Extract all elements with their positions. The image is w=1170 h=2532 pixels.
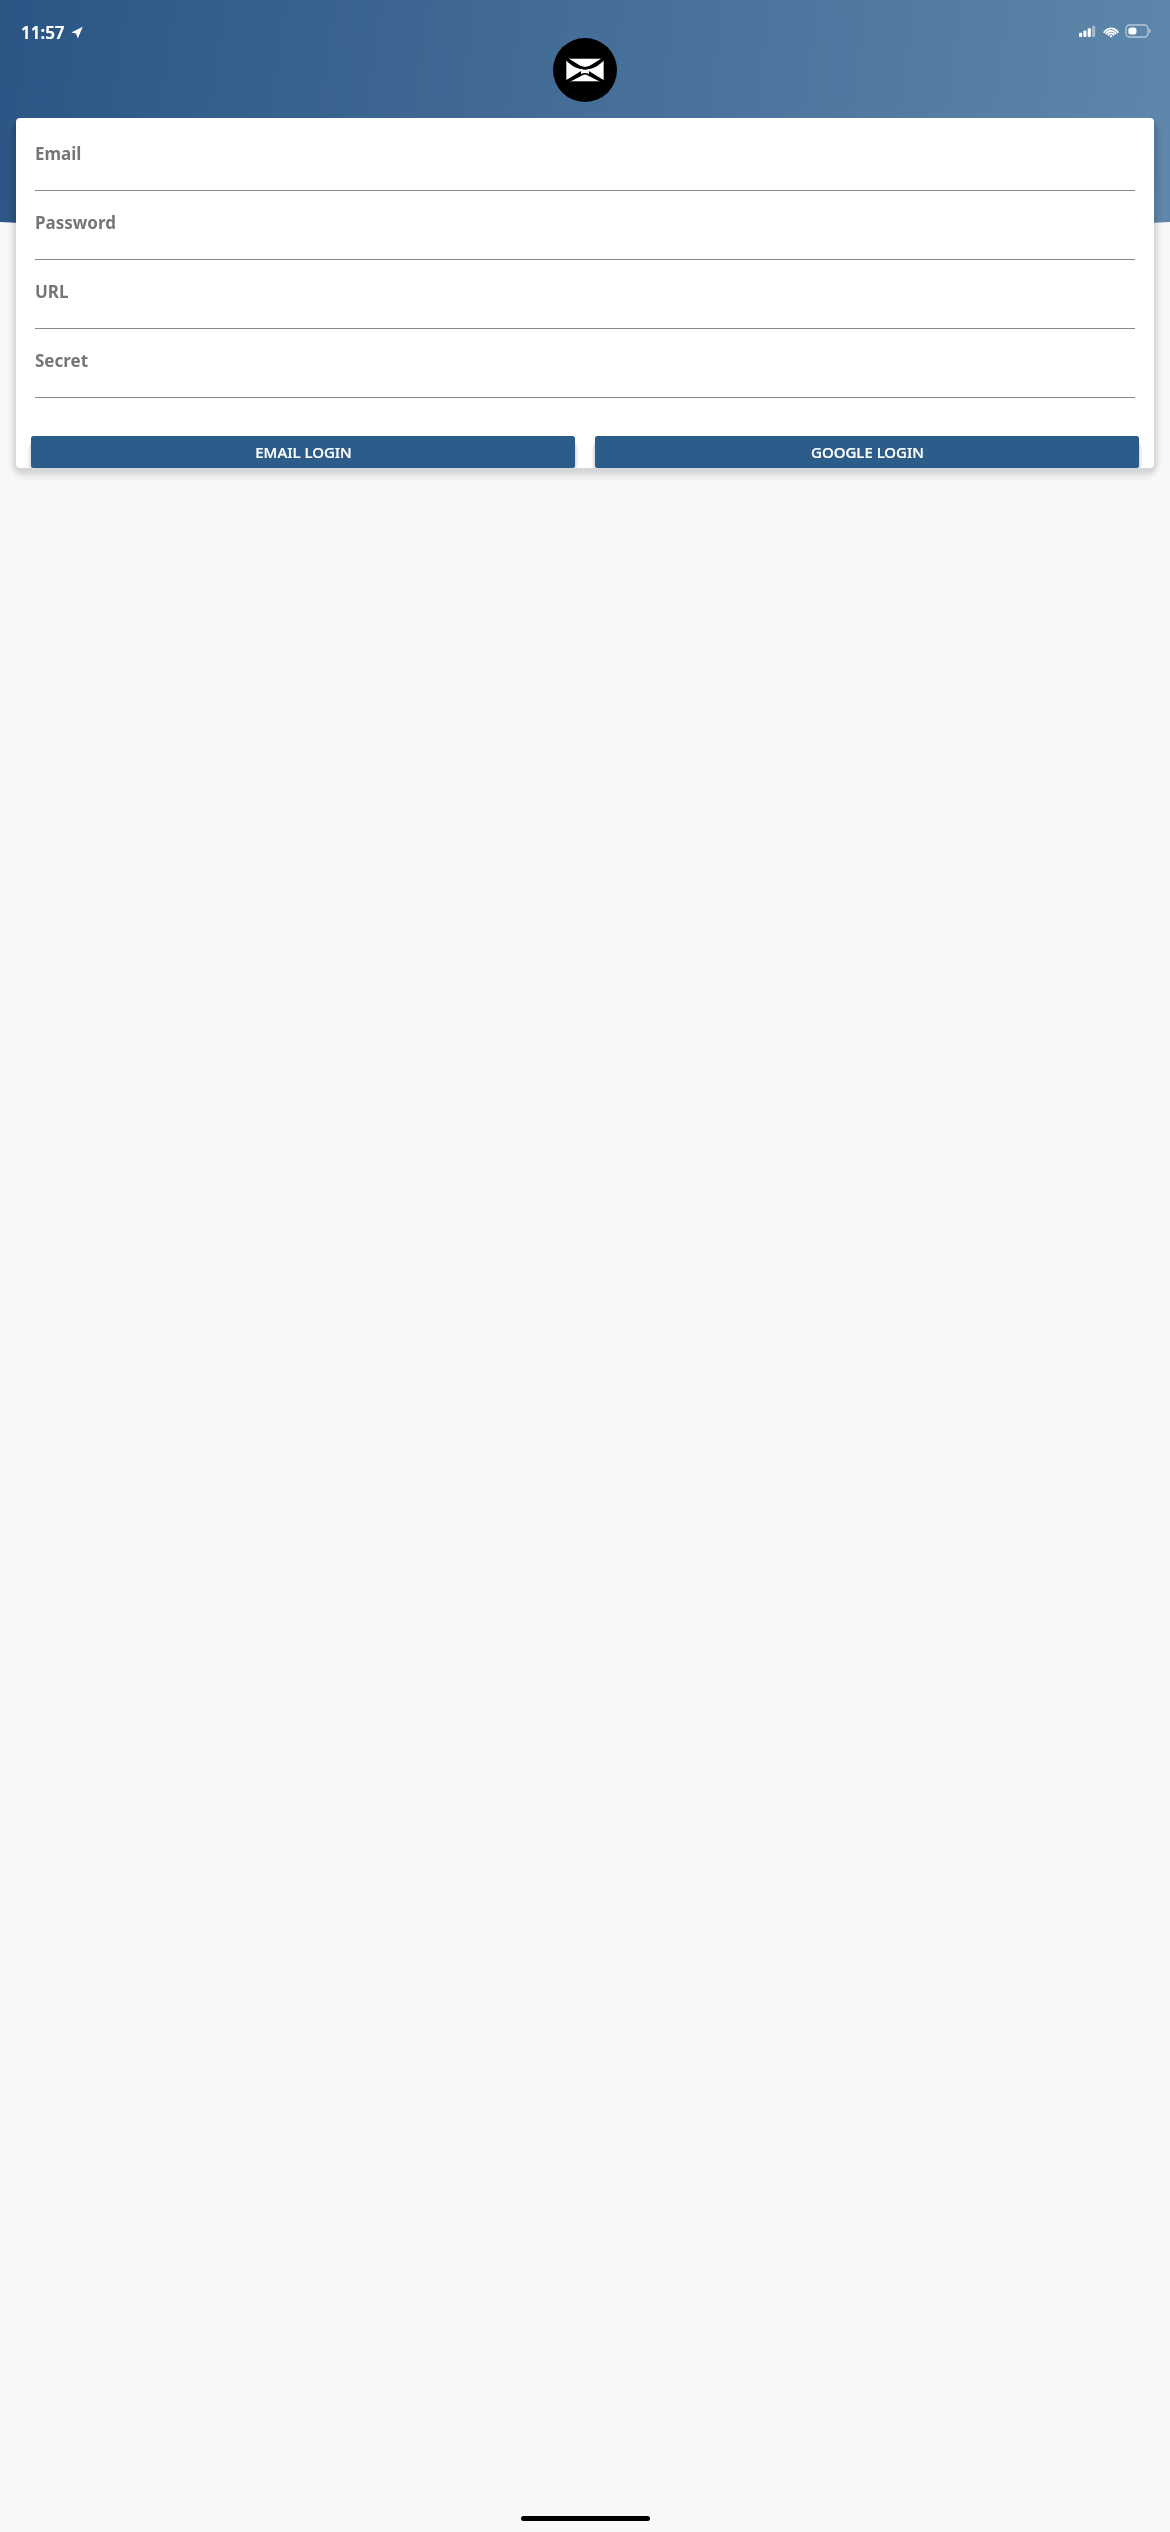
button[interactable]: Password	[16, 211, 1154, 280]
staticText: Secret	[35, 349, 89, 372]
staticText: EMAIL LOGIN	[255, 442, 352, 462]
staticText: GOOGLE LOGIN	[811, 442, 924, 462]
button[interactable]: GOOGLE LOGIN	[595, 436, 1139, 468]
staticText: Email	[35, 142, 82, 165]
staticText: URL	[35, 280, 69, 303]
button[interactable]: Secret	[16, 349, 1154, 418]
button[interactable]: Email	[16, 142, 1154, 211]
button[interactable]: URL	[16, 280, 1154, 349]
staticText: Password	[35, 211, 116, 234]
button[interactable]: EMAIL LOGIN	[31, 436, 575, 468]
staticText: 11:57	[21, 21, 65, 44]
